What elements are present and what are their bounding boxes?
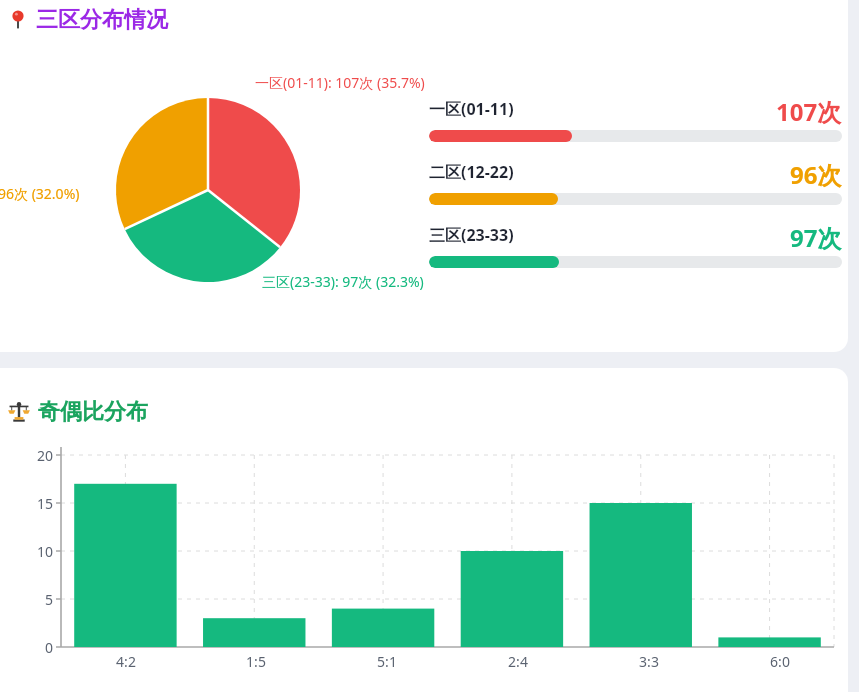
staticText: 96次 xyxy=(790,158,842,191)
staticText: 6:0 xyxy=(770,652,790,671)
staticText: 1:5 xyxy=(246,652,266,671)
other: Location pin xyxy=(8,10,28,30)
staticText: 5:1 xyxy=(377,652,397,671)
staticText: 奇偶比分布 xyxy=(38,398,148,426)
button[interactable]: Balance scale xyxy=(8,398,148,426)
staticText: 96次 (32.0%) xyxy=(0,184,80,203)
staticText: 20 xyxy=(37,446,54,465)
staticText: 三区分布情况 xyxy=(36,6,168,34)
button[interactable]: Location pin xyxy=(8,6,168,34)
staticText: 10 xyxy=(37,542,54,561)
staticText: 0 xyxy=(45,638,54,657)
staticText: 二区(12-22) xyxy=(429,161,514,183)
staticText: 15 xyxy=(37,494,54,513)
other: Balance scale xyxy=(8,401,30,423)
staticText: 三区(23-33): 97次 (32.3%) xyxy=(262,272,424,291)
staticText: 97次 xyxy=(790,221,842,254)
button[interactable]: 一区(01-11) xyxy=(429,95,842,145)
button[interactable]: 三区(23-33) xyxy=(429,221,842,271)
button[interactable]: 二区(12-22) xyxy=(429,158,842,208)
staticText: 一区(01-11) xyxy=(429,98,514,120)
staticText: 3:3 xyxy=(639,652,659,671)
staticText: 5 xyxy=(45,590,54,609)
staticText: 4:2 xyxy=(116,652,136,671)
staticText: 2:4 xyxy=(508,652,528,671)
staticText: 107次 xyxy=(776,95,842,128)
staticText: 三区(23-33) xyxy=(429,224,514,246)
staticText: 一区(01-11): 107次 (35.7%) xyxy=(255,73,425,92)
